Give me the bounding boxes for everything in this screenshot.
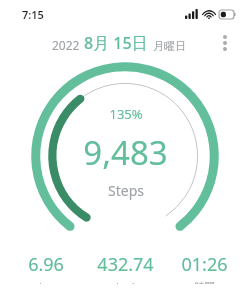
staticText: kcal: [116, 280, 135, 284]
button[interactable]: 2022: [52, 32, 212, 54]
staticText: 7:15: [22, 7, 44, 22]
staticText: km: [39, 280, 54, 284]
staticText: Steps: [108, 181, 144, 200]
staticText: 135%: [109, 105, 143, 123]
staticText: 時間: [195, 280, 215, 284]
staticText: 9,483: [83, 130, 168, 175]
staticText: 月曜日: [153, 39, 186, 53]
staticText: 8月 15日: [84, 32, 148, 54]
button[interactable]: 432.74: [86, 250, 165, 286]
staticText: 01:26: [181, 252, 228, 277]
staticText: 432.74: [97, 252, 154, 277]
button[interactable]: 01:26: [165, 250, 244, 286]
staticText: 6.96: [28, 252, 64, 277]
staticText: 2022: [52, 37, 80, 53]
button[interactable]: More options: [212, 30, 238, 56]
button[interactable]: 135%: [0, 58, 250, 250]
button[interactable]: 6.96: [6, 250, 86, 286]
